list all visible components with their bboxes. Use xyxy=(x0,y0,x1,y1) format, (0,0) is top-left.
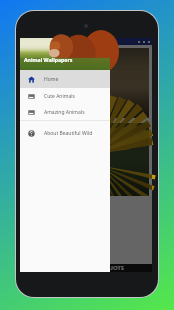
staticText: About Beautiful Wild xyxy=(44,130,93,137)
button[interactable]: Home xyxy=(20,70,110,88)
button[interactable]: Cute Animals xyxy=(20,88,110,104)
staticText: Amazing Animals xyxy=(44,109,85,116)
staticText: Cute Animals xyxy=(44,93,75,100)
staticText: Home xyxy=(44,76,59,83)
staticText: Animal Wallpapers xyxy=(24,56,73,63)
button[interactable]: Amazing Animals xyxy=(20,104,110,120)
button[interactable]: About Beautiful Wild xyxy=(20,125,110,141)
staticText: GET QUOTE xyxy=(91,264,125,272)
